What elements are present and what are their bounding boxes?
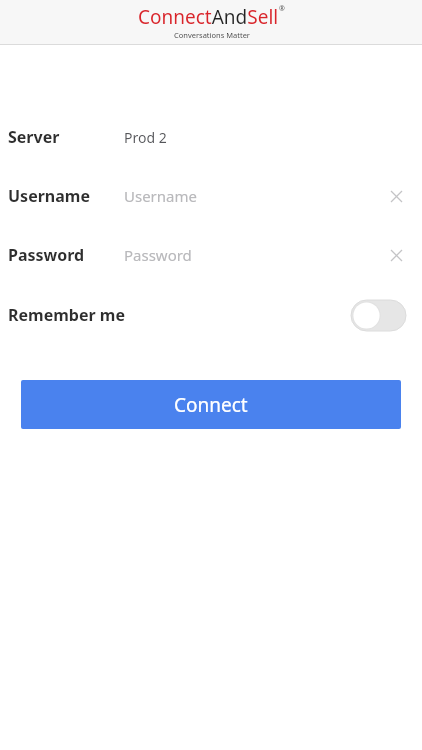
staticText: ® — [279, 4, 285, 14]
button[interactable]: Remember me — [0, 298, 422, 332]
staticText: Prod 2 — [124, 128, 167, 147]
staticText: Conversations Matter — [174, 30, 250, 40]
staticText: ConnectAndSell — [138, 4, 279, 30]
staticText: Remember me — [8, 304, 125, 326]
button[interactable]: Username — [0, 181, 422, 211]
staticText: Password — [8, 244, 85, 266]
button[interactable]: Remember me toggle, off — [351, 300, 406, 331]
staticText: Username — [124, 186, 197, 206]
staticText: Server — [8, 126, 60, 148]
button[interactable]: Server — [0, 122, 422, 152]
button[interactable]: Password — [0, 240, 422, 270]
staticText: Username — [8, 185, 90, 207]
button[interactable]: Connect — [21, 380, 401, 429]
staticText: Password — [124, 245, 192, 265]
button[interactable]: Clear Username — [384, 184, 408, 208]
button[interactable]: Clear Password — [384, 243, 408, 267]
staticText: Connect — [174, 392, 248, 418]
